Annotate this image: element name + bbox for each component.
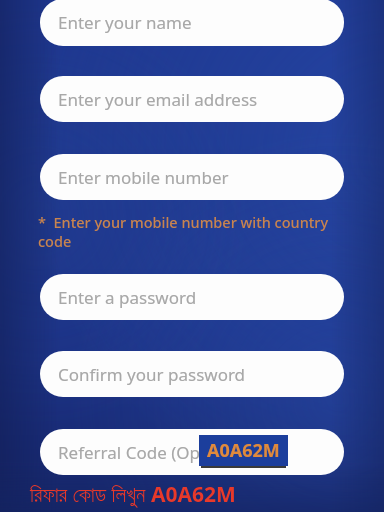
button[interactable]: Referral code A0A62M <box>199 435 288 466</box>
button[interactable]: Enter mobile number <box>40 154 344 200</box>
staticText: Enter mobile number <box>58 166 229 189</box>
staticText: A0A62M <box>207 438 280 463</box>
button[interactable]: Enter your name <box>40 0 344 46</box>
button[interactable]: Enter a password <box>40 274 344 320</box>
staticText: Confirm your password <box>58 363 246 386</box>
staticText: Enter a password <box>58 286 197 309</box>
button[interactable]: Confirm your password <box>40 351 344 397</box>
staticText: রিফার কোড লিখুন <box>30 480 151 509</box>
staticText: A0A62M <box>151 480 236 509</box>
staticText: Enter your email address <box>58 88 258 111</box>
staticText: * Enter your mobile number with country … <box>38 212 329 251</box>
staticText: Referral Code (Optional) <box>58 441 251 464</box>
button[interactable]: Referral Code (Optional) <box>40 429 344 475</box>
button[interactable]: Enter your email address <box>40 76 344 122</box>
staticText: Enter your name <box>58 11 192 34</box>
